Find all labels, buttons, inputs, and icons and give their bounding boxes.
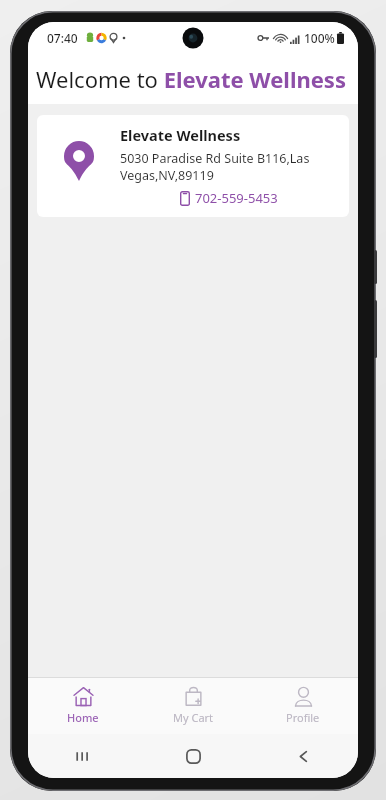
button[interactable]: Home	[138, 734, 248, 778]
staticText: Elevate Wellness	[120, 125, 241, 145]
button[interactable]: My Cart	[138, 678, 248, 734]
staticText: 5030 Paradise Rd Suite B116,Las Vegas,NV…	[120, 150, 337, 183]
staticText: 100%	[304, 30, 335, 46]
button[interactable]: Back	[248, 734, 358, 778]
button[interactable]: Elevate Wellness	[37, 115, 349, 217]
button[interactable]: Recents	[28, 734, 138, 778]
other: Call	[180, 191, 190, 206]
staticText: Welcome to Elevate Wellness	[36, 64, 346, 94]
staticText: 07:40	[47, 30, 78, 46]
staticText: 702-559-5453	[195, 189, 278, 207]
staticText: Home	[67, 710, 99, 725]
staticText: Profile	[286, 710, 320, 725]
staticText: My Cart	[173, 710, 214, 725]
button[interactable]: Profile	[248, 678, 358, 734]
button[interactable]: Call	[180, 189, 278, 207]
button[interactable]: Home	[28, 678, 138, 734]
